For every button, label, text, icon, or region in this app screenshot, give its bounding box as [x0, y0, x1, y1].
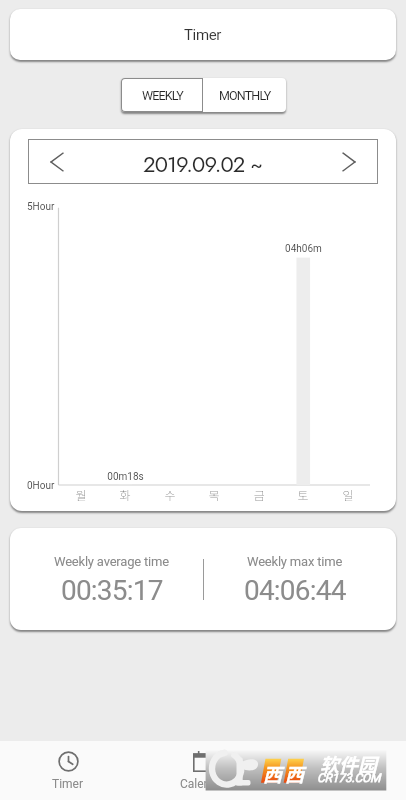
staticText: 04h06m — [285, 243, 322, 255]
staticText: 일 — [342, 486, 354, 503]
staticText: 软件园 — [320, 750, 378, 778]
staticText: CR173.COM — [317, 771, 381, 785]
button[interactable]: Previous week — [28, 139, 85, 184]
staticText: Timer — [184, 26, 222, 44]
staticText: Timer — [52, 777, 84, 791]
staticText: 5Hour — [27, 201, 55, 213]
button[interactable]: MONTHLY — [203, 78, 286, 112]
staticText: MONTHLY — [219, 88, 271, 103]
button[interactable]: Timer — [0, 741, 136, 800]
staticText: 00m18s — [107, 471, 144, 483]
staticText: Calendar — [180, 777, 228, 791]
staticText: Statistics — [314, 777, 364, 791]
button[interactable]: WEEKLY — [121, 78, 203, 112]
staticText: 수 — [164, 486, 176, 503]
staticText: 화 — [119, 486, 131, 503]
button[interactable]: Calendar — [136, 741, 271, 800]
button[interactable]: Next week — [320, 139, 378, 184]
button[interactable]: Weekly average time — [20, 528, 203, 630]
staticText: 금 — [253, 486, 265, 503]
button[interactable]: Timer — [10, 9, 396, 60]
staticText: Weekly max time — [247, 554, 343, 569]
staticText: 西 — [263, 760, 283, 788]
staticText: 토 — [297, 486, 309, 503]
staticText: 0Hour — [27, 480, 55, 492]
staticText: Weekly average time — [54, 554, 169, 569]
staticText: 西 — [285, 760, 305, 788]
staticText: 04:06:44 — [244, 574, 346, 607]
staticText: 00:35:17 — [61, 574, 163, 607]
staticText: 목 — [208, 486, 220, 503]
button[interactable]: Statistics — [271, 741, 406, 800]
staticText: 2019.09.02 ~ — [143, 148, 263, 180]
staticText: 월 — [75, 486, 87, 503]
staticText: WEEKLY — [142, 88, 183, 103]
button[interactable]: Weekly max time — [203, 528, 386, 630]
